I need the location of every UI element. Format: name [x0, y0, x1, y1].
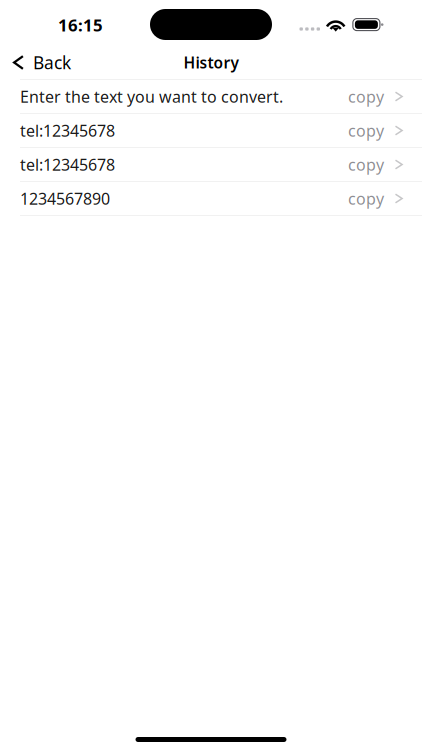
staticText: tel:12345678 [20, 120, 115, 141]
button[interactable]: Back [0, 46, 85, 79]
staticText: 1234567890 [20, 188, 110, 209]
staticText: History [183, 52, 238, 73]
staticText: copy [348, 120, 384, 141]
button[interactable]: Enter the text you want to convert. [0, 80, 422, 114]
button[interactable]: 1234567890 [0, 182, 422, 216]
staticText: 16:15 [58, 13, 103, 36]
button[interactable]: tel:12345678 [0, 114, 422, 148]
staticText: Enter the text you want to convert. [20, 86, 283, 107]
staticText: Back [33, 51, 71, 74]
staticText: copy [348, 188, 384, 209]
button[interactable]: tel:12345678 [0, 148, 422, 182]
staticText: copy [348, 86, 384, 107]
staticText: tel:12345678 [20, 154, 115, 175]
staticText: copy [348, 154, 384, 175]
